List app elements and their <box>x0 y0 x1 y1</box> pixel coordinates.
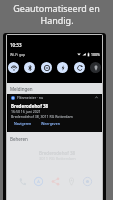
staticText: Weergeven <box>41 121 60 126</box>
staticText: Meldingen <box>10 86 33 92</box>
staticText: Wi-Fi gap <box>10 52 26 57</box>
button[interactable]: Quick setting <box>57 62 68 73</box>
button[interactable]: Quick setting <box>74 62 85 73</box>
button[interactable]: Weergeven <box>38 120 63 127</box>
staticText: 3011 RG Rotterdam <box>39 156 76 161</box>
button[interactable]: Quick setting <box>8 62 19 73</box>
button[interactable]: Locate <box>80 174 94 188</box>
button[interactable]: Share <box>48 174 62 188</box>
staticText: Brederodehof 38 <box>39 150 76 156</box>
button[interactable]: Quick setting <box>90 62 101 73</box>
staticText: Navigeren <box>14 121 32 126</box>
button[interactable]: Beheren <box>10 136 28 142</box>
button[interactable]: Navigate <box>31 174 45 188</box>
staticText: Beheren <box>10 136 28 142</box>
button[interactable]: Quick setting <box>41 62 52 73</box>
staticText: Brederodehof 38 <box>11 103 49 109</box>
staticText: 16:50 16 juni 2021 <box>11 109 41 114</box>
staticText: Handig. <box>40 14 74 26</box>
button[interactable]: Navigeren <box>11 120 35 127</box>
staticText: 10:33 <box>10 42 22 48</box>
button[interactable]: Quick setting <box>24 62 35 73</box>
staticText: 100% <box>91 52 100 57</box>
button[interactable]: Flitsmeister · nu <box>8 94 101 132</box>
staticText: Flitsmeister · nu <box>17 95 44 100</box>
staticText: Brederodehof 38, 3011 RG Rotterdam <box>11 114 73 119</box>
staticText: Geautomatiseerd en <box>13 2 100 14</box>
button[interactable]: Call <box>15 174 29 188</box>
